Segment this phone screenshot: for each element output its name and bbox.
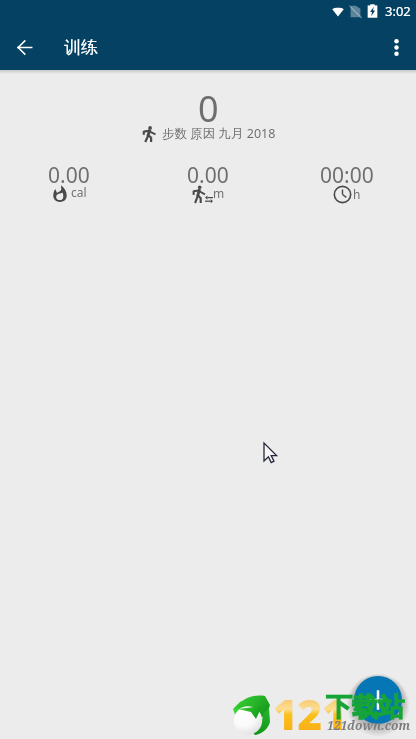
staticText: 121 <box>273 685 347 739</box>
button[interactable]: Back <box>0 24 48 70</box>
staticText: 0 <box>198 84 219 133</box>
button[interactable]: Add workout <box>354 676 402 724</box>
staticText: h <box>353 186 361 202</box>
button[interactable]: 0.00 <box>0 161 138 190</box>
staticText: 3:02 <box>385 2 411 20</box>
staticText: 下载站 <box>326 691 404 724</box>
button[interactable]: h <box>277 185 416 204</box>
button[interactable]: 00:00 <box>277 161 416 190</box>
staticText: 训练 <box>64 37 98 58</box>
button[interactable]: 0.00 <box>138 161 277 190</box>
staticText: 0.00 <box>48 161 90 190</box>
staticText: 00:00 <box>320 161 374 190</box>
staticText: 步数 原因 九月 2018 <box>162 125 276 142</box>
staticText: 121down.com <box>327 717 411 733</box>
staticText: m <box>213 185 225 201</box>
staticText: 0.00 <box>187 161 229 190</box>
button[interactable]: cal <box>0 185 138 202</box>
button[interactable]: More options <box>372 24 416 70</box>
staticText: cal <box>71 184 87 200</box>
button[interactable]: m <box>138 185 277 203</box>
